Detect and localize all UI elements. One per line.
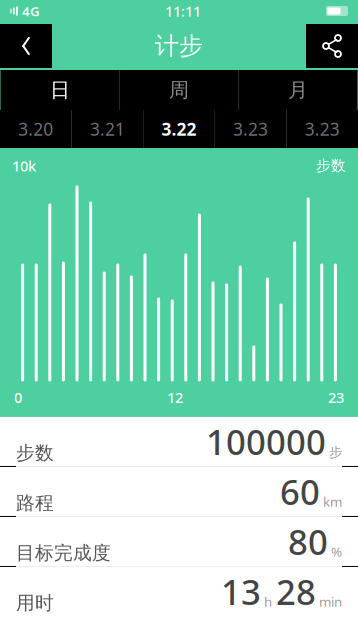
staticText: 3.23 bbox=[305, 117, 340, 140]
staticText: 日 bbox=[50, 78, 70, 102]
staticText: h bbox=[264, 593, 272, 610]
staticText: 60 bbox=[280, 468, 320, 514]
button[interactable]: Share bbox=[306, 24, 358, 68]
button[interactable]: 步数 bbox=[0, 417, 358, 466]
staticText: 0 bbox=[14, 387, 22, 407]
staticText: 路程 bbox=[16, 491, 54, 514]
staticText: 步 bbox=[329, 444, 342, 460]
staticText: 11:11 bbox=[165, 1, 201, 21]
staticText: 23 bbox=[328, 387, 344, 407]
staticText: 3.20 bbox=[18, 117, 53, 140]
button[interactable]: 3.20 bbox=[0, 110, 72, 148]
staticText: 用时 bbox=[16, 591, 54, 614]
button[interactable]: 周 bbox=[119, 70, 238, 110]
button[interactable]: 3.23 bbox=[286, 110, 358, 148]
button[interactable]: 日 bbox=[0, 70, 119, 110]
staticText: 13 bbox=[221, 568, 261, 614]
staticText: 4G bbox=[22, 2, 40, 20]
staticText: min bbox=[319, 593, 342, 610]
button[interactable]: 3.21 bbox=[72, 110, 143, 148]
staticText: 100000 bbox=[206, 418, 326, 464]
button[interactable]: 用时 bbox=[0, 567, 358, 616]
button[interactable]: 月 bbox=[238, 70, 357, 110]
staticText: 步数 bbox=[316, 157, 346, 175]
staticText: 12 bbox=[167, 387, 183, 407]
button[interactable]: 3.22 bbox=[143, 110, 215, 148]
button[interactable]: 3.23 bbox=[215, 110, 286, 148]
button[interactable]: 目标完成度 bbox=[0, 517, 358, 566]
staticText: 月 bbox=[288, 78, 308, 102]
staticText: 10k bbox=[12, 156, 36, 175]
staticText: 3.22 bbox=[161, 117, 196, 140]
staticText: 3.21 bbox=[90, 117, 125, 140]
staticText: 周 bbox=[169, 78, 189, 102]
staticText: 3.23 bbox=[233, 117, 268, 140]
button[interactable]: Back bbox=[0, 24, 52, 68]
staticText: 28 bbox=[276, 568, 316, 614]
staticText: 80 bbox=[288, 518, 328, 564]
staticText: 计步 bbox=[155, 31, 203, 61]
staticText: km bbox=[323, 493, 342, 510]
staticText: % bbox=[331, 543, 342, 560]
staticText: 目标完成度 bbox=[16, 541, 111, 564]
staticText: 步数 bbox=[16, 441, 54, 464]
button[interactable]: 路程 bbox=[0, 467, 358, 516]
